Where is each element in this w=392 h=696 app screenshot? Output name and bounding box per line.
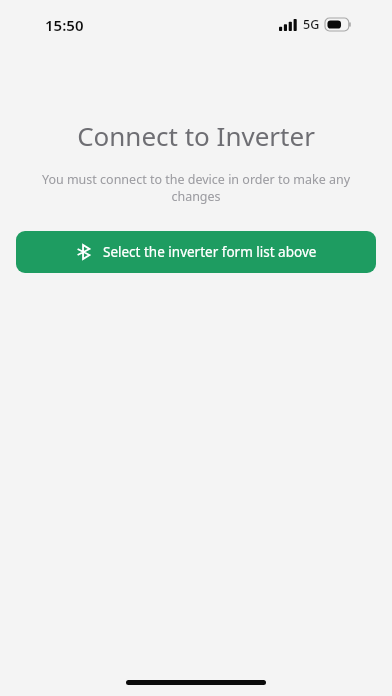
staticText: 15:50 xyxy=(45,15,84,35)
button[interactable]: Select the inverter form list above xyxy=(16,231,376,273)
staticText: Select the inverter form list above xyxy=(103,243,317,261)
staticText: Connect to Inverter xyxy=(77,118,315,153)
staticText: You must connect to the device in order … xyxy=(20,171,372,205)
staticText: 5G xyxy=(303,16,320,33)
